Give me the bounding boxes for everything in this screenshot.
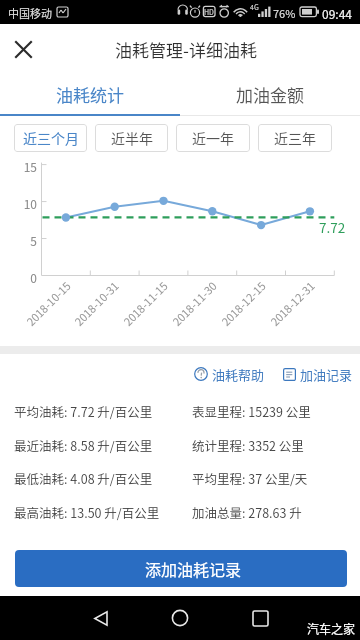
staticText: 5: [13, 232, 37, 249]
staticText: 汽车之家: [307, 620, 356, 637]
button[interactable]: 油耗统计: [0, 74, 180, 115]
staticText: 加油记录: [300, 365, 353, 384]
staticText: 平均里程: 37 公里/天: [192, 469, 308, 487]
staticText: 添加油耗记录: [145, 557, 242, 580]
staticText: 2018-10-15: [22, 277, 72, 328]
staticText: 2018-10-31: [70, 277, 120, 328]
button[interactable]: 近半年: [95, 124, 168, 152]
staticText: 最近油耗: 8.58 升/百公里: [14, 436, 153, 454]
staticText: 15: [13, 158, 37, 175]
button[interactable]: 油耗帮助: [194, 363, 265, 385]
staticText: 油耗统计: [56, 82, 124, 107]
staticText: 7.72: [319, 217, 346, 237]
staticText: 2018-11-15: [119, 277, 169, 328]
staticText: 最低油耗: 4.08 升/百公里: [14, 469, 153, 487]
button[interactable]: 近三年: [258, 124, 332, 152]
button[interactable]: Close: [0, 26, 46, 72]
staticText: 09:44: [322, 5, 352, 22]
staticText: 油耗帮助: [212, 365, 265, 384]
staticText: 加油总量: 278.63 升: [192, 503, 302, 521]
staticText: 0: [13, 269, 37, 286]
staticText: 近一年: [192, 128, 234, 148]
staticText: 2018-12-15: [217, 277, 267, 328]
staticText: 加油金额: [236, 82, 304, 107]
button[interactable]: 近三个月: [14, 124, 87, 152]
staticText: 表显里程: 15239 公里: [192, 402, 311, 420]
staticText: 76%: [273, 5, 296, 21]
staticText: 近三个月: [23, 128, 79, 148]
staticText: 平均油耗: 7.72 升/百公里: [14, 402, 153, 420]
staticText: 4G: [250, 2, 259, 12]
staticText: 统计里程: 3352 公里: [192, 436, 304, 454]
button[interactable]: 近一年: [176, 124, 250, 152]
staticText: 近半年: [111, 128, 153, 148]
button[interactable]: Back: [80, 596, 120, 640]
button[interactable]: Home: [160, 596, 200, 640]
button[interactable]: 添加油耗记录: [15, 550, 347, 587]
staticText: 2018-12-31: [266, 277, 316, 328]
button[interactable]: 加油金额: [180, 74, 360, 115]
staticText: 油耗管理-详细油耗: [115, 37, 257, 62]
staticText: 10: [13, 195, 37, 212]
button[interactable]: 加油记录: [283, 363, 353, 385]
staticText: 最高油耗: 13.50 升/百公里: [14, 503, 160, 521]
button[interactable]: Recents: [240, 596, 280, 640]
staticText: 2018-11-30: [168, 277, 218, 328]
staticText: HD: [204, 7, 214, 17]
staticText: 近三年: [274, 128, 316, 148]
staticText: 中国移动: [8, 5, 52, 21]
